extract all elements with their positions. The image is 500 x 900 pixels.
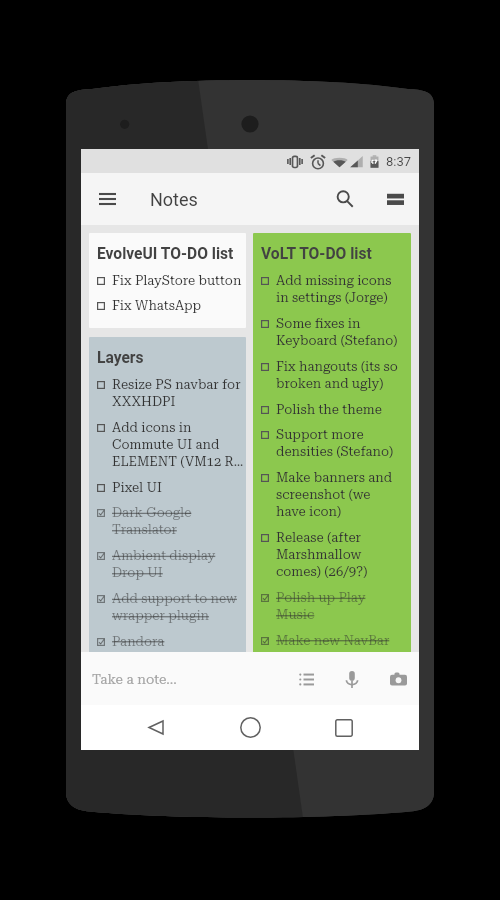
staticText: Some fixes in Keyboard (Stefano) [276, 316, 398, 349]
button[interactable]: VoLT TO-DO list [253, 233, 411, 652]
button[interactable]: Back [132, 705, 180, 750]
button[interactable]: Layers [89, 337, 246, 652]
staticText: Release (after Marshmallow comes) (26/9?… [276, 530, 368, 580]
staticText: Make new NavBar [276, 633, 390, 648]
button[interactable]: New list [289, 662, 323, 696]
staticText: Pandora [112, 634, 165, 649]
button[interactable]: Home [226, 705, 274, 750]
button[interactable]: Open navigation menu [89, 181, 125, 217]
staticText: Make banners and screenshot (we have ico… [276, 470, 393, 520]
staticText: Support more densities (Stefano) [276, 427, 394, 460]
staticText: Fix WhatsApp [112, 298, 202, 313]
staticText: VoLT TO-DO list [261, 245, 372, 263]
staticText: Fix PlayStore button [112, 273, 242, 288]
button[interactable]: Search [327, 181, 363, 217]
staticText: Resize PS navbar for XXXHDPI [112, 377, 241, 410]
staticText: Pixel UI [112, 480, 162, 495]
staticText: Take a note... [92, 671, 177, 687]
staticText: Notes [150, 189, 198, 210]
staticText: Layers [97, 349, 144, 367]
staticText: 8:37 [386, 154, 412, 169]
staticText: Dark Google Translator [112, 505, 192, 538]
staticText: EvolveUI TO-DO list [97, 245, 234, 263]
staticText: Add icons in Commute UI and ELEMENT (VM1… [112, 420, 244, 470]
staticText: Fix hangouts (its so broken and ugly) [276, 359, 398, 392]
staticText: Polish up Play Music [276, 590, 366, 623]
staticText: Add missing icons in settings (Jorge) [276, 273, 392, 306]
staticText: Add support to new wrapper plugin [112, 591, 237, 624]
button[interactable]: Record voice note [335, 662, 369, 696]
staticText: Ambient display Drop UI [112, 548, 216, 581]
staticText: Polish the theme [276, 402, 382, 417]
button[interactable]: Recent apps [320, 705, 368, 750]
button[interactable]: EvolveUI TO-DO list [89, 233, 246, 328]
button[interactable]: Switch list or grid view [377, 181, 413, 217]
button[interactable]: Add photo note [381, 662, 415, 696]
